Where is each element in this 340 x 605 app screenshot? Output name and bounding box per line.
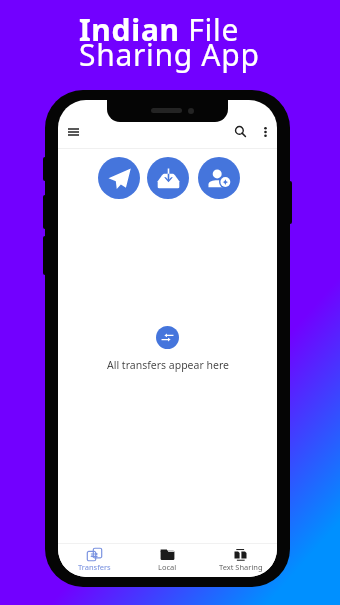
button[interactable]: Menu bbox=[62, 121, 84, 143]
button[interactable]: Transfers bbox=[58, 544, 131, 572]
staticText: Text Sharing bbox=[219, 562, 263, 572]
button[interactable]: More options bbox=[253, 120, 277, 144]
staticText: Local bbox=[158, 562, 177, 572]
button[interactable]: Text Sharing bbox=[204, 544, 277, 572]
button[interactable]: Receive bbox=[147, 157, 189, 199]
staticText: Transfers bbox=[78, 562, 111, 572]
button[interactable]: Transfer bbox=[156, 326, 179, 349]
staticText: Indian File Sharing App bbox=[79, 9, 260, 74]
button[interactable]: Local bbox=[131, 544, 204, 572]
button[interactable]: Add person bbox=[198, 157, 240, 199]
staticText: All transfers appear here bbox=[107, 358, 229, 372]
button[interactable]: Search bbox=[228, 119, 252, 143]
button[interactable]: Send bbox=[98, 157, 140, 199]
